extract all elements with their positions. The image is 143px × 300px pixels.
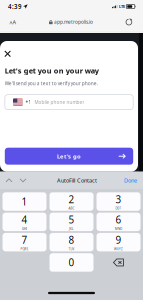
staticText: 9 xyxy=(115,233,121,247)
staticText: 3 xyxy=(115,193,121,206)
staticText: PQRS xyxy=(20,247,28,251)
staticText: 0 xyxy=(68,256,74,269)
button[interactable]: Previous field xyxy=(2,174,16,186)
button[interactable]: 1 xyxy=(2,192,46,211)
button[interactable]: 3 xyxy=(96,192,140,211)
staticText: Let's go xyxy=(57,152,81,160)
staticText: JKL xyxy=(69,227,74,231)
staticText: AutoFill Contact xyxy=(57,176,97,184)
staticText: Let's get you on your way xyxy=(5,66,99,76)
staticText: LTE xyxy=(119,4,125,9)
staticText: MNO xyxy=(115,227,122,231)
staticText: 4 xyxy=(21,213,27,226)
staticText: 2 xyxy=(68,193,74,206)
button[interactable]: Delete xyxy=(96,253,140,272)
staticText: We'll send you a text to verify your pho… xyxy=(5,80,98,87)
button[interactable]: 2 xyxy=(49,192,93,211)
button[interactable]: Reload xyxy=(120,14,138,30)
button[interactable]: 7 xyxy=(2,233,46,251)
button[interactable]: Let's go xyxy=(5,148,133,165)
button[interactable]: Close xyxy=(5,41,16,59)
staticText: 1 xyxy=(21,195,27,208)
button[interactable]: 8 xyxy=(49,233,93,251)
staticText: 8 xyxy=(68,233,74,247)
staticText: Done xyxy=(124,176,137,184)
staticText: 7 xyxy=(21,233,27,247)
staticText: 4:39 xyxy=(8,2,22,11)
button[interactable]: 6 xyxy=(96,213,140,231)
staticText: Mobile phone number xyxy=(34,99,84,105)
button[interactable]: 0 xyxy=(49,253,93,272)
staticText: 6 xyxy=(115,213,121,226)
button[interactable]: Done xyxy=(124,176,137,184)
staticText: TUV xyxy=(68,247,74,251)
staticText: DEF xyxy=(115,206,121,210)
staticText: app.metropolis.io xyxy=(54,19,93,25)
staticText: ABC xyxy=(68,206,74,210)
staticText: ᴀA xyxy=(9,18,16,26)
button[interactable]: 5 xyxy=(49,213,93,231)
staticText: +1 xyxy=(25,99,31,105)
staticText: GHI xyxy=(22,227,27,231)
button[interactable]: Next field xyxy=(16,174,30,186)
button[interactable]: Page settings xyxy=(4,14,22,30)
button[interactable]: 4 xyxy=(2,213,46,231)
button[interactable]: 9 xyxy=(96,233,140,251)
staticText: WXYZ xyxy=(114,247,123,251)
button[interactable]: AutoFill Contact xyxy=(57,176,97,184)
staticText: 5 xyxy=(68,213,74,226)
